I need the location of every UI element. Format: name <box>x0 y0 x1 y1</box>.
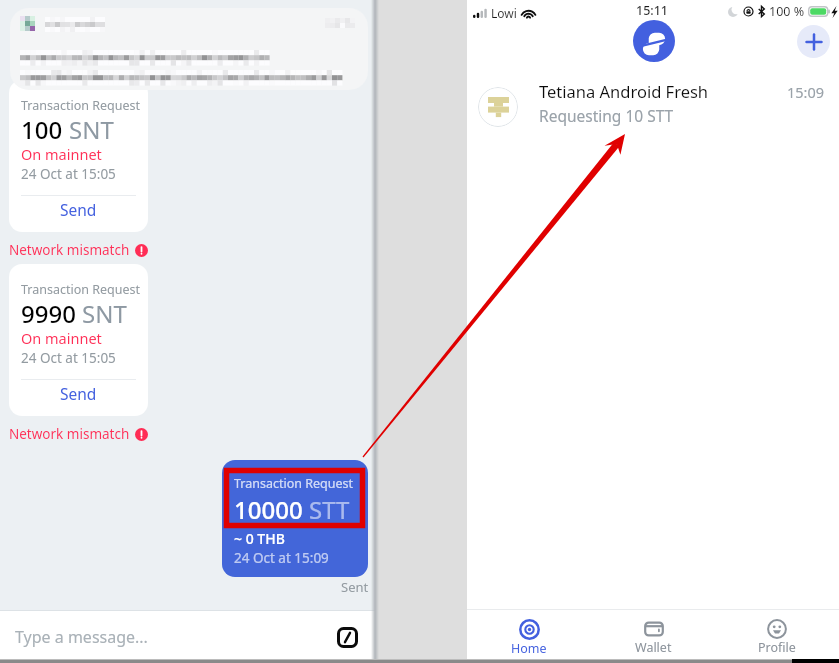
staticText: On mainnet <box>21 328 102 348</box>
button[interactable]: Notification <box>10 8 368 90</box>
staticText: Profile <box>758 639 796 656</box>
button[interactable]: Profile <box>715 610 839 663</box>
staticText: On mainnet <box>21 144 102 164</box>
staticText: Transaction Request <box>234 475 368 492</box>
button[interactable]: Send <box>9 380 148 416</box>
staticText: SNT <box>82 297 127 330</box>
button[interactable]: New chat <box>797 25 830 58</box>
staticText: Send <box>60 199 97 220</box>
staticText: Transaction Request <box>21 97 148 114</box>
staticText: Network mismatch <box>9 241 130 259</box>
staticText: 15:09 <box>787 82 825 102</box>
staticText: 10000 <box>234 493 303 526</box>
button[interactable]: Transaction Request <box>9 264 148 416</box>
staticText: ~ 0 THB <box>234 529 285 548</box>
staticText: 24 Oct at 15:09 <box>234 549 329 567</box>
staticText: Wallet <box>635 639 672 656</box>
staticText: Tetiana Android Fresh <box>539 80 709 102</box>
staticText: Requesting 10 STT <box>539 105 674 126</box>
staticText: 24 Oct at 15:05 <box>21 349 116 367</box>
staticText: Lowi <box>491 5 517 21</box>
staticText: Network mismatch <box>9 425 130 443</box>
button[interactable]: Status logo <box>633 20 675 62</box>
staticText: Type a message... <box>15 626 148 648</box>
staticText: Send <box>60 383 97 404</box>
button[interactable]: Tetiana Android Fresh <box>467 68 839 130</box>
staticText: 100 % <box>769 3 805 20</box>
staticText: Home <box>511 640 547 657</box>
staticText: Transaction Request <box>21 281 148 298</box>
button[interactable]: Transaction Request <box>9 80 148 232</box>
button[interactable]: Home <box>467 610 591 663</box>
button[interactable]: Send <box>9 196 148 232</box>
staticText: Sent <box>341 578 369 596</box>
staticText: SNT <box>69 113 114 146</box>
staticText: 15:11 <box>636 2 669 19</box>
staticText: 24 Oct at 15:05 <box>21 165 116 183</box>
button[interactable]: Slash commands <box>337 627 358 648</box>
staticText: 9990 <box>21 297 76 330</box>
button[interactable]: Wallet <box>591 610 715 663</box>
staticText: 100 <box>21 113 63 146</box>
button[interactable]: Transaction Request <box>222 460 368 577</box>
staticText: STT <box>309 493 350 526</box>
